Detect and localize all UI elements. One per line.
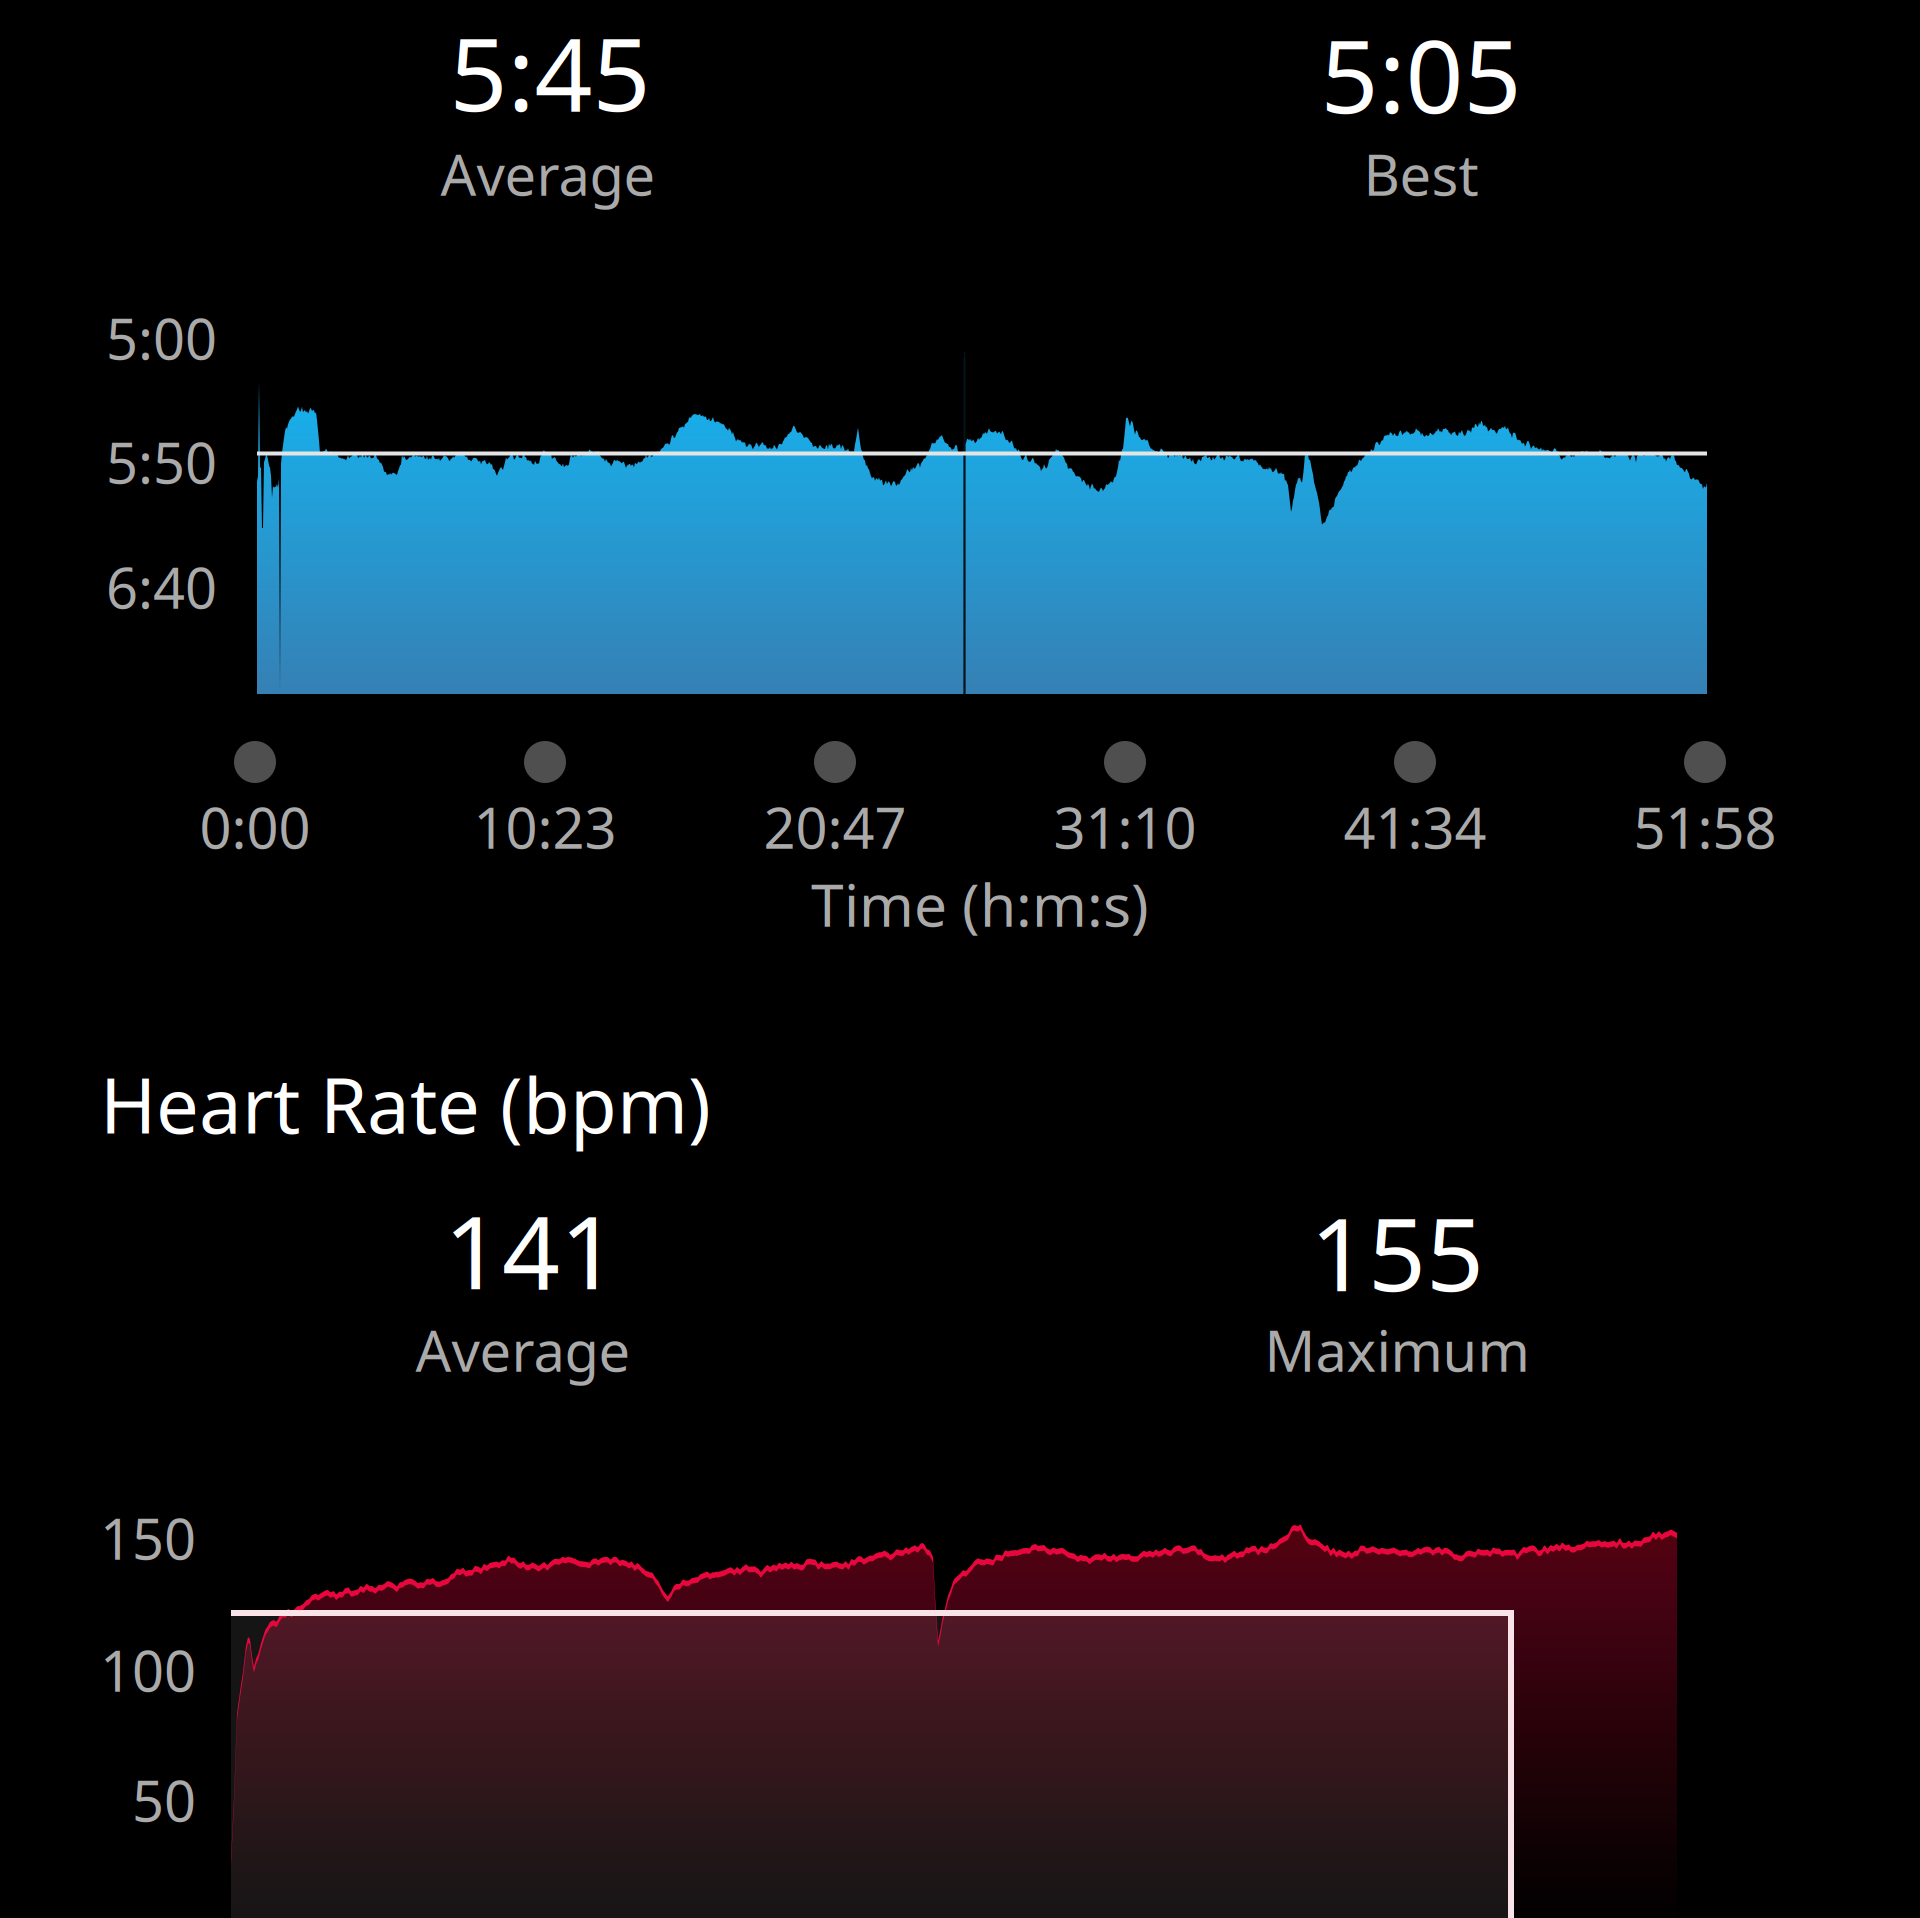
staticText: Best — [1363, 137, 1478, 211]
staticText: Time (h:m:s) — [811, 865, 1149, 943]
staticText: 20:47 — [763, 790, 906, 864]
staticText: Heart Rate (bpm) — [100, 1053, 711, 1154]
staticText: Average — [440, 137, 655, 211]
staticText: 0:00 — [199, 790, 310, 864]
staticText: 50 — [132, 1763, 196, 1837]
staticText: 5:05 — [1320, 7, 1521, 141]
staticText: 41:34 — [1343, 790, 1486, 864]
staticText: 10:23 — [473, 790, 616, 864]
staticText: Average — [415, 1313, 630, 1387]
staticText: 155 — [1310, 1185, 1484, 1319]
staticText: 31:10 — [1053, 790, 1196, 864]
staticText: 5:45 — [449, 5, 650, 139]
staticText: 51:58 — [1633, 790, 1776, 864]
staticText: Maximum — [1264, 1313, 1529, 1387]
staticText: 150 — [100, 1501, 196, 1575]
staticText: 5:50 — [106, 425, 217, 499]
staticText: 5:00 — [106, 301, 217, 375]
staticText: 141 — [444, 1183, 618, 1317]
staticText: 6:40 — [106, 550, 217, 624]
staticText: 100 — [100, 1633, 196, 1707]
